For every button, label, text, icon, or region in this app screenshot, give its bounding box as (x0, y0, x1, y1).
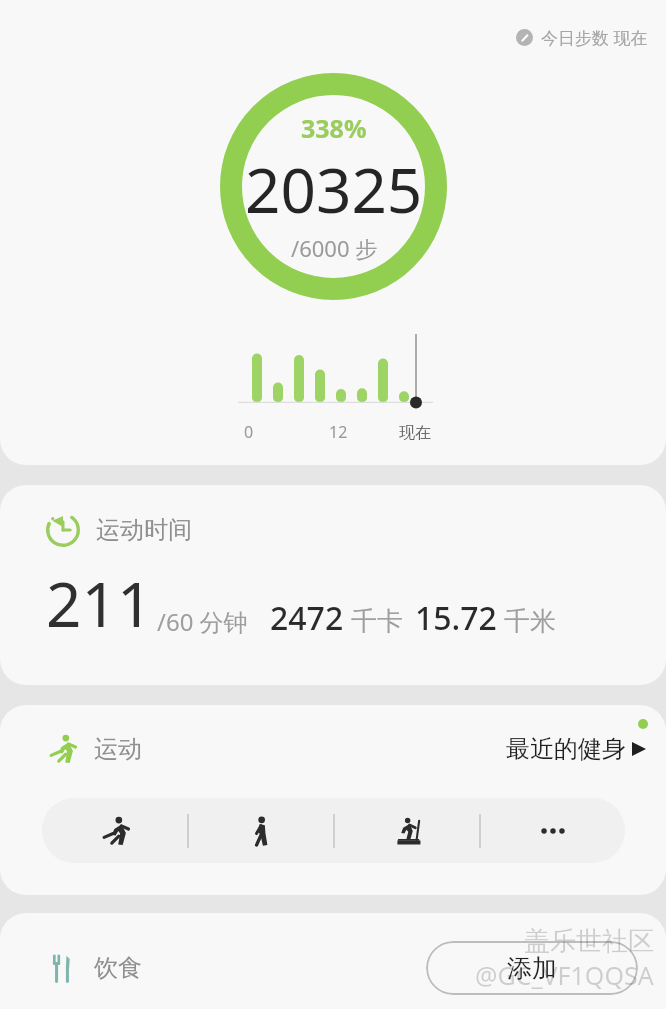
button[interactable]: 运动时间 (0, 485, 666, 685)
other: Edit (516, 29, 533, 46)
staticText: 12 (329, 421, 348, 443)
staticText: /60 分钟 (157, 605, 248, 638)
staticText: 千卡 (344, 602, 403, 638)
button[interactable]: More (481, 798, 625, 863)
staticText: 0 (244, 421, 254, 443)
staticText: 最近的健身 (506, 734, 626, 764)
staticText: 饮食 (94, 953, 142, 983)
staticText: /6000 步 (291, 233, 378, 263)
button[interactable]: 饮食 (0, 913, 666, 1009)
button[interactable]: 最近的健身 (506, 734, 646, 764)
staticText: 现在 (399, 423, 431, 443)
staticText: 338% (301, 111, 367, 145)
button[interactable]: Treadmill (335, 798, 479, 863)
staticText: 千米 (497, 602, 556, 638)
button[interactable]: 添加 (426, 941, 638, 995)
staticText: 运动 (94, 734, 142, 764)
button[interactable]: Running (42, 798, 187, 863)
staticText: 添加 (507, 953, 557, 984)
staticText: 15.72 (415, 596, 497, 640)
button[interactable]: Walking (189, 798, 333, 863)
staticText: 20325 (245, 147, 423, 231)
staticText: 今日步数 现在 (541, 26, 648, 49)
staticText: 211 (46, 561, 153, 645)
staticText: 运动时间 (96, 515, 192, 545)
staticText: 2472 (270, 596, 344, 640)
button[interactable]: Edit (0, 0, 666, 465)
staticText: 盖乐世社区 (524, 925, 654, 958)
staticText: @GC_VF1QQSA (475, 958, 654, 992)
